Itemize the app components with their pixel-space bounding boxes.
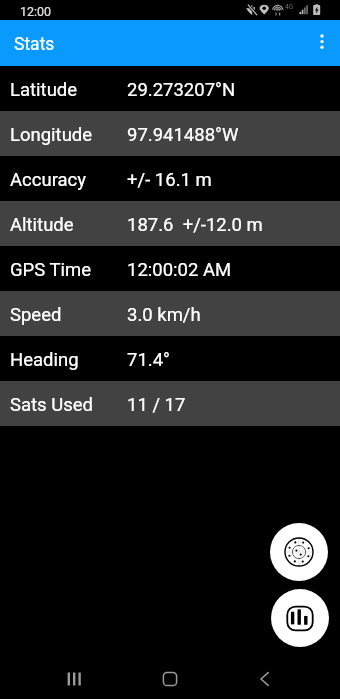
button[interactable]: GPS Time <box>0 246 340 291</box>
staticText: 3.0 km/h <box>127 304 201 326</box>
staticText: Accuracy <box>10 169 87 191</box>
staticText: 97.941488°W <box>127 124 239 146</box>
staticText: Longitude <box>10 124 93 146</box>
staticText: Heading <box>10 349 79 371</box>
button[interactable]: Accuracy <box>0 156 340 201</box>
button[interactable]: More options <box>294 20 340 66</box>
button[interactable]: Sky view <box>270 523 328 581</box>
staticText: Speed <box>10 304 62 326</box>
button[interactable]: Recents <box>54 659 94 699</box>
staticText: 71.4° <box>127 349 170 371</box>
button[interactable]: Back <box>245 659 285 699</box>
button[interactable]: Speed <box>0 291 340 336</box>
staticText: Stats <box>14 34 55 55</box>
staticText: Latitude <box>10 79 78 101</box>
button[interactable]: Home <box>150 659 190 699</box>
button[interactable]: Sats Used <box>0 381 340 426</box>
staticText: 29.273207°N <box>127 79 236 101</box>
button[interactable]: Altitude <box>0 201 340 246</box>
button[interactable]: Heading <box>0 336 340 381</box>
button[interactable]: Latitude <box>0 66 340 111</box>
staticText: GPS Time <box>10 259 92 281</box>
staticText: 4G <box>285 3 294 11</box>
staticText: 187.6 +/-12.0 m <box>127 214 263 236</box>
staticText: 12:00 <box>20 4 52 19</box>
button[interactable]: Chart <box>271 589 329 647</box>
staticText: 11 / 17 <box>127 394 186 416</box>
staticText: Sats Used <box>10 394 94 416</box>
staticText: +/- 16.1 m <box>127 169 212 191</box>
staticText: 12:00:02 AM <box>127 259 232 281</box>
staticText: Altitude <box>10 214 74 236</box>
button[interactable]: Longitude <box>0 111 340 156</box>
